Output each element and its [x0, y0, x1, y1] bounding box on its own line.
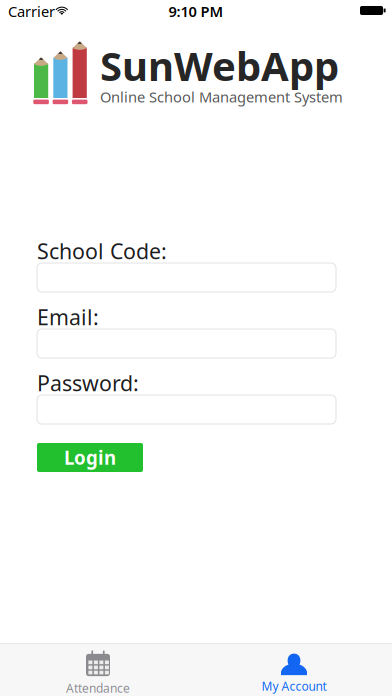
staticText: Email:	[37, 303, 99, 331]
staticText: 9:10 PM	[168, 1, 223, 21]
staticText: School Code:	[37, 237, 167, 265]
staticText: Online School Management System	[100, 87, 343, 106]
staticText: Carrier	[8, 1, 55, 21]
button[interactable]: Attendance	[0, 644, 196, 696]
staticText: Login	[64, 445, 116, 470]
staticText: Attendance	[66, 680, 130, 696]
button[interactable]: Login	[37, 443, 143, 472]
button[interactable]: My Account	[196, 644, 392, 696]
staticText: Password:	[37, 369, 139, 397]
staticText: My Account	[261, 678, 326, 694]
staticText: SunWebApp	[100, 39, 339, 92]
